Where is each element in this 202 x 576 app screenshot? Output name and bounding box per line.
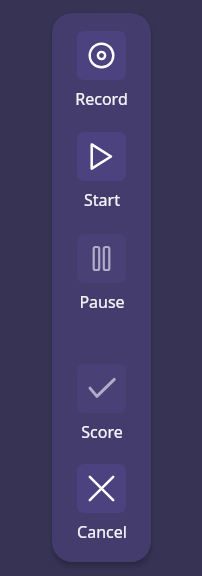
button[interactable]: Score bbox=[52, 364, 151, 443]
staticText: Pause bbox=[79, 291, 125, 313]
staticText: Record bbox=[75, 88, 128, 110]
button[interactable]: Cancel bbox=[52, 464, 151, 543]
staticText: Cancel bbox=[77, 521, 127, 543]
button[interactable]: Record bbox=[52, 31, 151, 110]
button[interactable]: Start bbox=[52, 132, 151, 211]
button[interactable]: Pause bbox=[52, 234, 151, 313]
staticText: Start bbox=[84, 189, 120, 211]
staticText: Score bbox=[81, 421, 123, 443]
